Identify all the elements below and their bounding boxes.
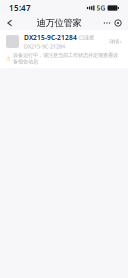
staticText: DX215-9C-21284 xyxy=(24,43,65,50)
button[interactable]: Settings xyxy=(112,16,124,30)
staticText: 详情 › xyxy=(109,38,122,45)
staticText: 15:47 xyxy=(9,3,31,13)
staticText: 迪万位管家 xyxy=(36,17,81,29)
staticText: 已连接 xyxy=(79,34,94,41)
staticText: 5G xyxy=(96,4,105,12)
staticText: DX215-9C-21284 xyxy=(24,33,77,42)
staticText: ⚠ xyxy=(6,55,11,62)
staticText: 设备运行中，请注意当前工作状态并定期查看设备报告信息 xyxy=(13,52,118,65)
button[interactable]: Back xyxy=(4,16,16,30)
button[interactable]: More xyxy=(102,16,112,30)
